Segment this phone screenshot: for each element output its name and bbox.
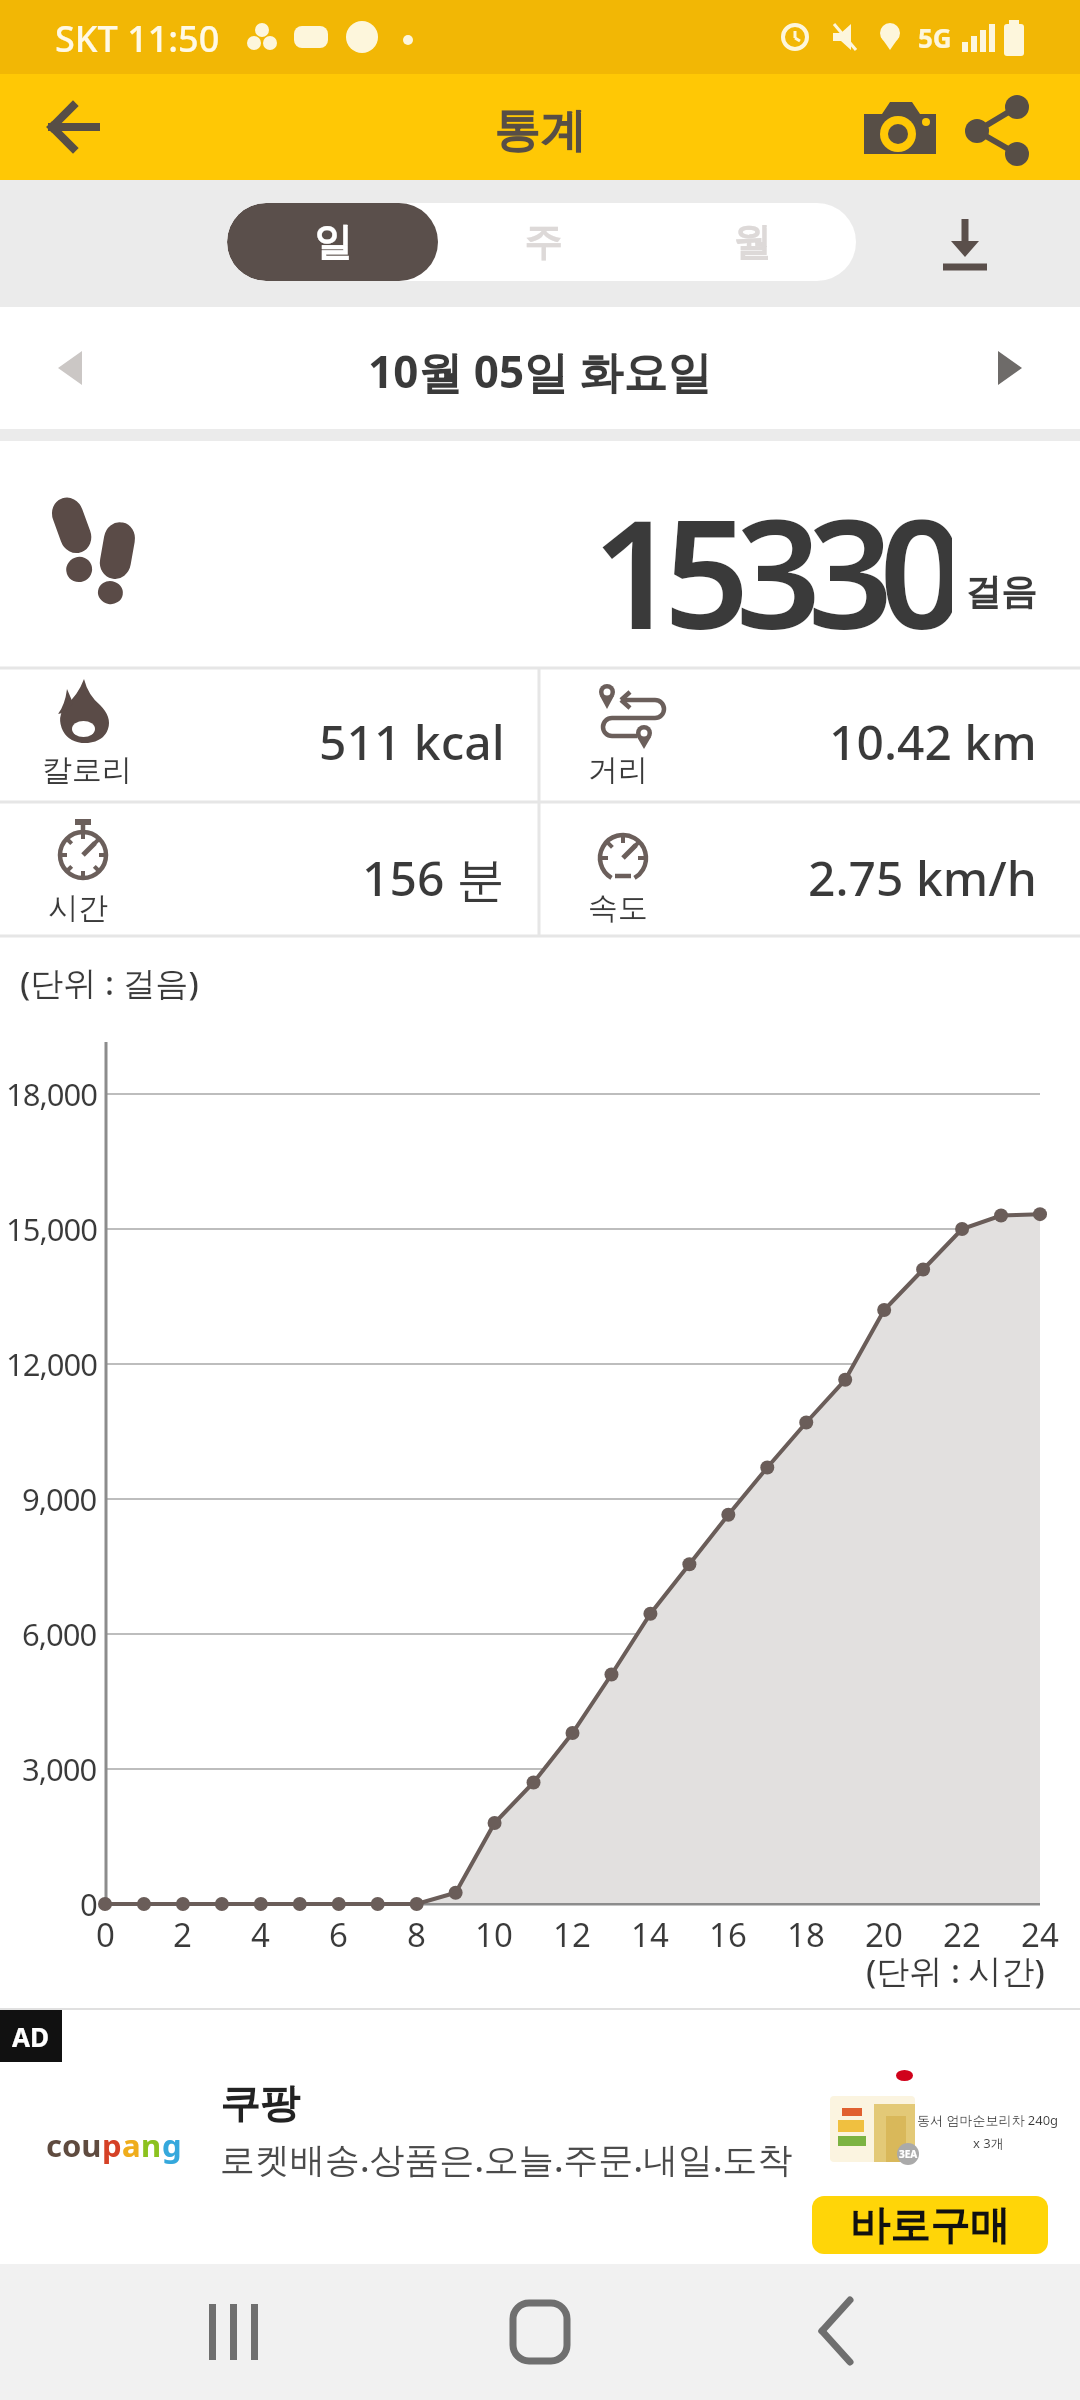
staticText: 22 — [943, 1912, 981, 1956]
staticText: 0 — [80, 1883, 97, 1925]
staticText: 0 — [96, 1912, 115, 1956]
staticText: (단위 : 걸음) — [20, 960, 199, 1004]
button[interactable]: 일 — [227, 203, 438, 281]
staticText: 주 — [524, 218, 562, 266]
staticText: 6,000 — [22, 1613, 97, 1655]
staticText: n — [141, 2124, 162, 2166]
button[interactable] — [790, 2284, 886, 2380]
staticText: 2 — [173, 1912, 192, 1956]
staticText: 3EA — [899, 2147, 918, 2161]
staticText: p — [102, 2124, 122, 2166]
staticText: 2.75 km/h — [808, 845, 1037, 905]
staticText: 10.42 km — [829, 709, 1037, 769]
staticText: 동서 엄마순보리차 240g — [917, 2111, 1059, 2129]
staticText: 24 — [1021, 1912, 1059, 1956]
staticText: 쿠팡 — [220, 2078, 300, 2128]
staticText: (단위 : 시간) — [866, 1948, 1045, 1992]
button[interactable] — [860, 96, 942, 158]
button[interactable] — [955, 94, 1040, 160]
staticText: 10월 05일 화요일 — [368, 341, 712, 397]
button[interactable] — [30, 94, 116, 160]
staticText: 12,000 — [6, 1343, 97, 1385]
button[interactable]: 주 — [438, 203, 647, 281]
button[interactable] — [925, 205, 1005, 279]
staticText: 일 — [314, 218, 352, 266]
staticText: 걸음 — [965, 569, 1037, 614]
staticText: 바로구매 — [850, 2200, 1010, 2250]
staticText: SKT 11:50 — [55, 14, 220, 63]
staticText: 시간 — [48, 889, 108, 925]
staticText: 14 — [631, 1912, 669, 1956]
staticText: 16 — [709, 1912, 747, 1956]
staticText: 속도 — [588, 889, 648, 925]
staticText: a — [122, 2124, 141, 2166]
staticText: cou — [46, 2124, 102, 2166]
button[interactable] — [980, 337, 1050, 399]
staticText: 10 — [475, 1912, 513, 1956]
staticText: 거리 — [588, 751, 648, 787]
staticText: 칼로리 — [42, 751, 132, 787]
staticText: AD — [12, 2019, 50, 2054]
button[interactable] — [30, 337, 100, 399]
staticText: 월 — [733, 218, 771, 266]
staticText: 15,000 — [6, 1208, 97, 1250]
button[interactable] — [492, 2284, 588, 2380]
staticText: 12 — [553, 1912, 591, 1956]
staticText: g — [162, 2124, 182, 2166]
staticText: 18,000 — [6, 1073, 97, 1115]
staticText: 9,000 — [22, 1478, 97, 1520]
staticText: 20 — [865, 1912, 903, 1956]
staticText: 로켓배송.상품은.오늘.주문.내일.도착 — [220, 2135, 793, 2183]
staticText: 통계 — [494, 102, 586, 154]
staticText: 15330 — [592, 469, 952, 639]
staticText: 6 — [329, 1912, 348, 1956]
staticText: 156 분 — [362, 845, 505, 905]
staticText: 18 — [787, 1912, 825, 1956]
staticText: 5G — [918, 20, 952, 55]
staticText: x 3개 — [973, 2134, 1004, 2152]
staticText: 511 kcal — [319, 709, 505, 769]
staticText: 8 — [407, 1912, 426, 1956]
button[interactable]: 월 — [647, 203, 856, 281]
staticText: 4 — [251, 1912, 270, 1956]
button[interactable] — [185, 2284, 281, 2380]
button[interactable]: 바로구매 — [812, 2196, 1048, 2254]
button[interactable]: AD — [0, 2008, 1080, 2264]
staticText: 3,000 — [22, 1748, 97, 1790]
